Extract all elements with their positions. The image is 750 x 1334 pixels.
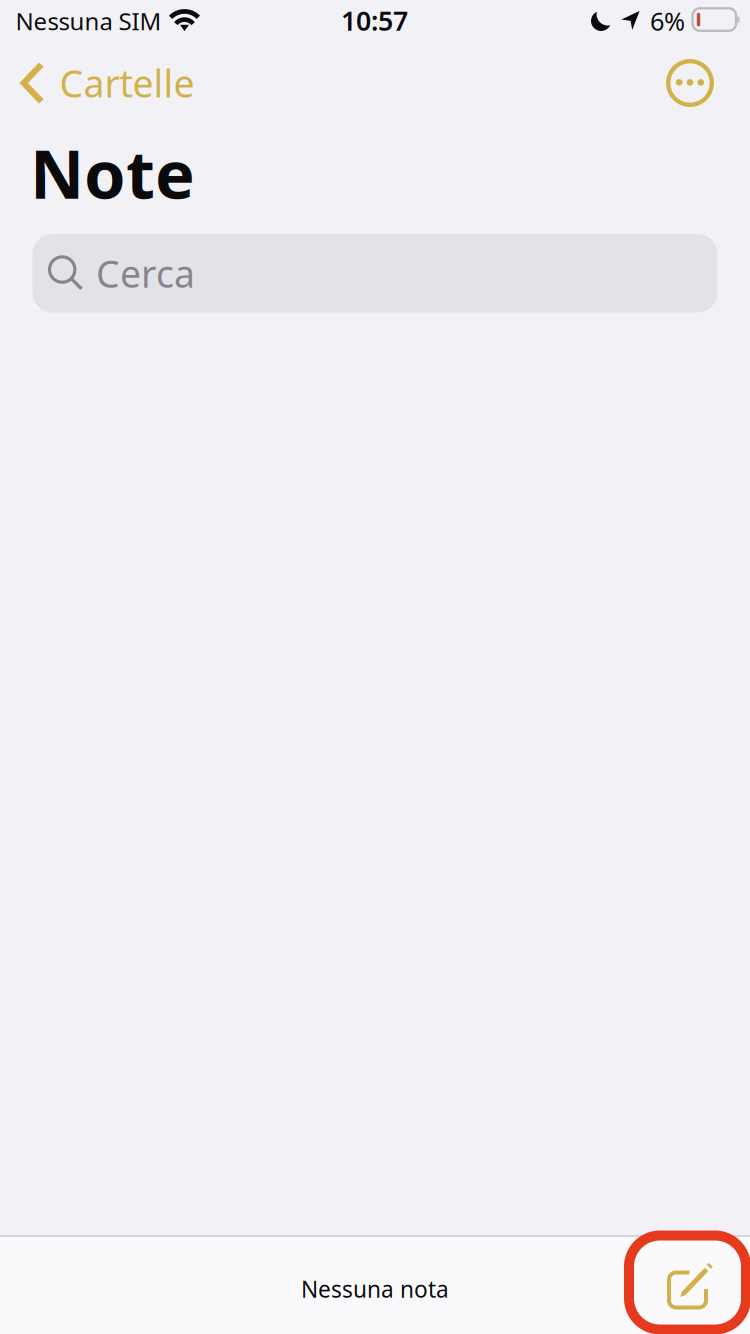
staticText: 10:57 [341, 3, 408, 38]
button[interactable]: Altro [666, 59, 714, 107]
staticText: Cartelle [59, 58, 194, 108]
button[interactable]: Cerca [32, 234, 717, 313]
button[interactable]: Cartelle [4, 47, 208, 119]
button[interactable]: Nuova nota [647, 1248, 735, 1334]
staticText: Cerca [96, 249, 195, 298]
staticText: Note [30, 129, 195, 217]
staticText: 6% [650, 4, 685, 38]
staticText: Nessuna SIM [15, 5, 161, 37]
staticText: Nessuna nota [301, 1274, 449, 1304]
